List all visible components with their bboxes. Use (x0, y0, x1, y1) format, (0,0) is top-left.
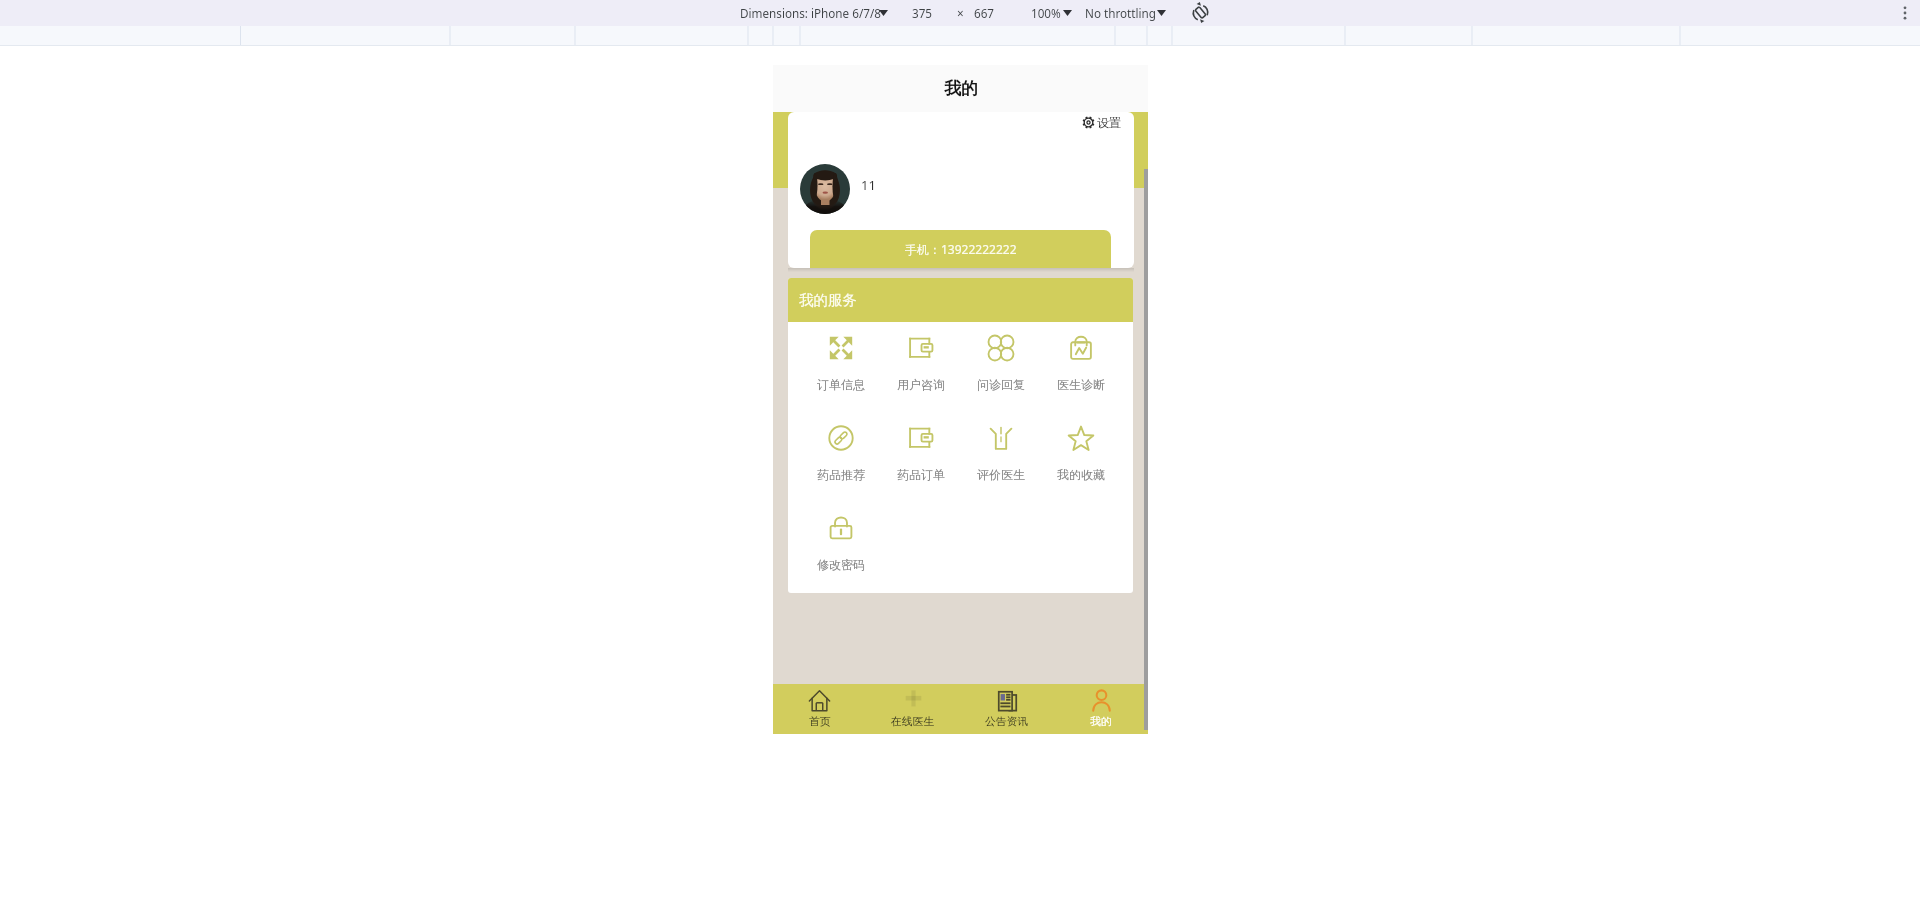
button[interactable]: 医生诊断 (1041, 322, 1121, 412)
staticText: 100% (1031, 5, 1061, 21)
staticText: 11 (861, 176, 876, 194)
staticText: 问诊回复 (977, 377, 1025, 392)
button[interactable]: Rotate device (1191, 3, 1210, 22)
button[interactable]: 首页 (773, 684, 866, 734)
staticText: 我的服务 (799, 291, 857, 309)
button[interactable]: 我的收藏 (1041, 412, 1121, 502)
button[interactable]: 设置 (1082, 115, 1121, 130)
staticText: No throttling (1085, 5, 1156, 21)
button[interactable]: 评价医生 (961, 412, 1041, 502)
staticText: 设置 (1097, 115, 1121, 130)
staticText: 在线医生 (891, 715, 935, 729)
staticText: 公告资讯 (985, 715, 1029, 729)
button[interactable]: 药品订单 (881, 412, 961, 502)
staticText: 医生诊断 (1057, 377, 1105, 392)
staticText: 我的 (944, 78, 978, 99)
staticText: Dimensions: iPhone 6/7/8 (740, 5, 881, 21)
button[interactable]: 订单信息 (800, 322, 881, 412)
staticText: 667 (974, 5, 995, 21)
staticText: 我的 (1090, 715, 1112, 729)
button[interactable]: 用户咨询 (881, 322, 961, 412)
staticText: 评价医生 (977, 467, 1025, 482)
button[interactable] (800, 164, 850, 214)
button[interactable]: 修改密码 (800, 502, 881, 592)
staticText: 我的收藏 (1057, 467, 1105, 482)
staticText: 药品推荐 (817, 467, 865, 482)
button[interactable]: 药品推荐 (800, 412, 881, 502)
button[interactable]: More options (1896, 4, 1914, 22)
button[interactable]: 公告资讯 (960, 684, 1054, 734)
staticText: 375 (912, 5, 933, 21)
staticText: 订单信息 (817, 377, 865, 392)
staticText: 手机：13922222222 (905, 241, 1017, 257)
button[interactable]: 我的 (1054, 684, 1148, 734)
button[interactable]: 在线医生 (866, 684, 960, 734)
button[interactable]: 问诊回复 (961, 322, 1041, 412)
staticText: 修改密码 (817, 557, 865, 572)
staticText: 药品订单 (897, 467, 945, 482)
staticText: 用户咨询 (897, 377, 945, 392)
button[interactable]: 手机：13922222222 (810, 230, 1111, 268)
staticText: × (957, 5, 964, 21)
staticText: 首页 (809, 715, 831, 729)
